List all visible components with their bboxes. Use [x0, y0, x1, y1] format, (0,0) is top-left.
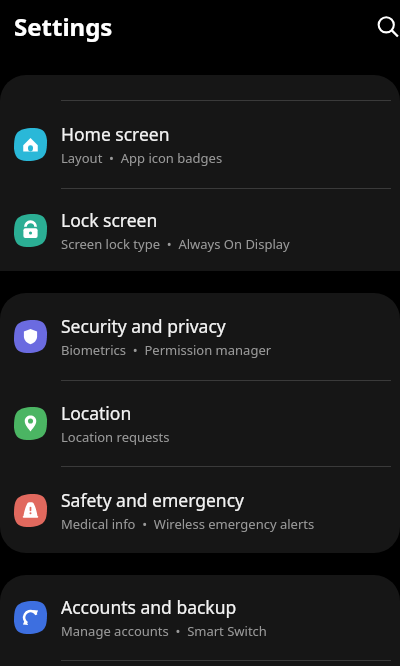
button[interactable]: Location: [0, 381, 400, 466]
button[interactable]: Accounts and backup: [0, 575, 400, 660]
staticText: Location: [61, 401, 132, 425]
staticText: Layout • App icon badges: [61, 149, 223, 167]
staticText: Location requests: [61, 428, 170, 446]
button[interactable]: Security and privacy: [0, 293, 400, 380]
staticText: Security and privacy: [61, 314, 226, 338]
staticText: Manage accounts • Smart Switch: [61, 622, 267, 640]
button[interactable]: Safety and emergency: [0, 467, 400, 553]
staticText: Safety and emergency: [61, 488, 244, 512]
button[interactable]: Home screen: [0, 101, 400, 188]
staticText: Medical info • Wireless emergency alerts: [61, 515, 315, 533]
staticText: Settings: [14, 10, 113, 43]
staticText: Accounts and backup: [61, 595, 237, 619]
staticText: Screen lock type • Always On Display: [61, 235, 290, 253]
staticText: Biometrics • Permission manager: [61, 341, 272, 359]
staticText: Lock screen: [61, 208, 158, 232]
button[interactable]: Lock screen: [0, 189, 400, 271]
staticText: Home screen: [61, 122, 170, 146]
button[interactable]: Search: [368, 7, 400, 47]
